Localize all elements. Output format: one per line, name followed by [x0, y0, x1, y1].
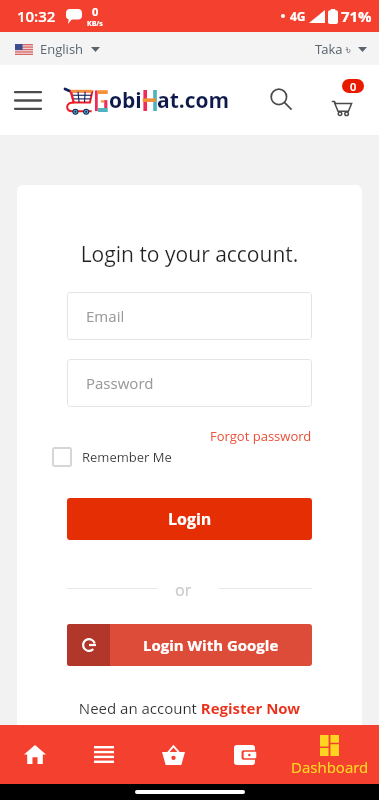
- button[interactable]: Email: [67, 292, 312, 340]
- staticText: 0: [350, 79, 357, 93]
- staticText: 71%: [341, 6, 372, 26]
- button[interactable]: Forgot password: [67, 425, 312, 447]
- button[interactable]: Taka ৳: [305, 34, 379, 64]
- staticText: Taka ৳: [315, 40, 351, 58]
- button[interactable]: Remember Me: [52, 447, 172, 471]
- button[interactable]: Wallet: [209, 725, 280, 784]
- staticText: KB/s: [87, 19, 103, 29]
- staticText: English: [40, 40, 84, 58]
- button[interactable]: Login With Google: [67, 624, 312, 666]
- staticText: Login: [168, 508, 212, 530]
- staticText: Login With Google: [143, 635, 279, 655]
- button[interactable]: Dashboard: [280, 725, 379, 784]
- staticText: 0: [92, 4, 99, 19]
- staticText: Remember Me: [82, 448, 172, 466]
- button[interactable]: Need an account Register Now: [67, 698, 312, 718]
- button[interactable]: Login: [67, 498, 312, 540]
- staticText: obi: [109, 86, 142, 115]
- button[interactable]: Cart: [325, 77, 365, 123]
- button[interactable]: Home: [0, 725, 69, 784]
- button[interactable]: Categories: [69, 725, 138, 784]
- staticText: Forgot password: [210, 427, 312, 445]
- staticText: Email: [86, 306, 125, 326]
- button[interactable]: Password: [67, 359, 312, 407]
- staticText: Password: [86, 373, 154, 393]
- staticText: 10:32: [17, 6, 56, 26]
- staticText: Dashboard: [291, 757, 369, 777]
- staticText: Login to your account.: [67, 240, 312, 269]
- staticText: or: [175, 579, 192, 597]
- staticText: at.com: [157, 86, 230, 115]
- button[interactable]: Cart: [138, 725, 209, 784]
- button[interactable]: English: [0, 34, 110, 64]
- button[interactable]: Search: [264, 82, 300, 118]
- staticText: 4G: [290, 8, 306, 24]
- button[interactable]: Menu: [10, 82, 46, 118]
